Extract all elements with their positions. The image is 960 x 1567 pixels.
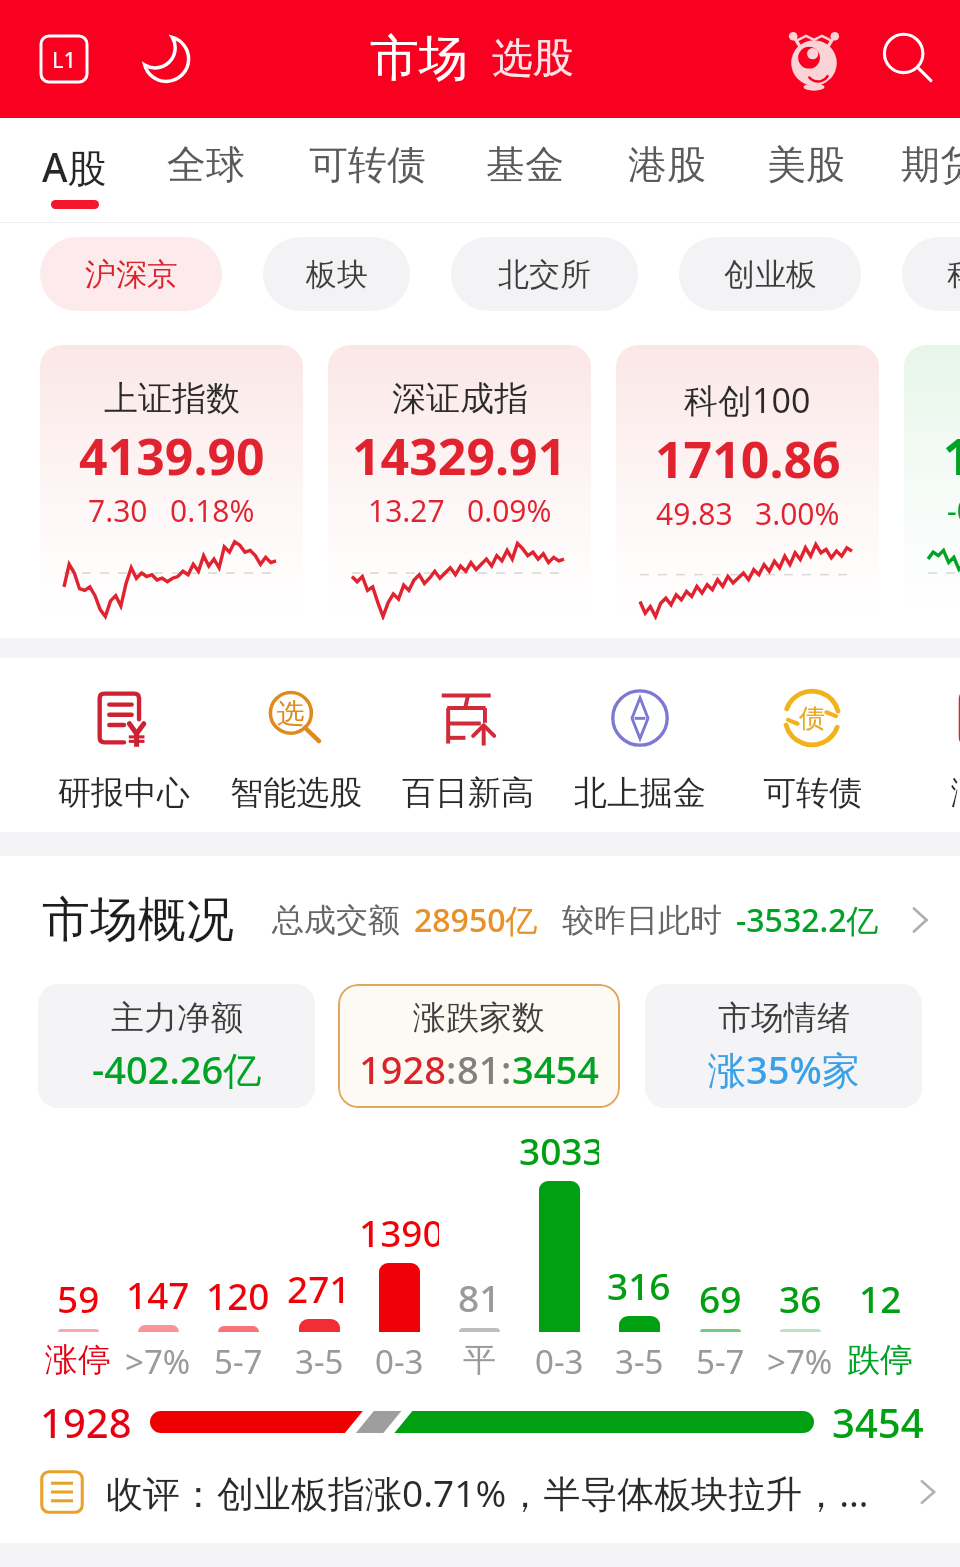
staticText: -0.44	[947, 490, 960, 531]
button[interactable]: Level 1 quotes	[34, 29, 94, 89]
staticText: 跌停	[847, 1339, 913, 1381]
staticText: 科创板	[947, 255, 960, 294]
staticText: 港股	[628, 140, 706, 189]
button[interactable]: A股	[24, 118, 124, 222]
button[interactable]: 北上掘金	[554, 658, 726, 832]
button[interactable]: 市场概况	[0, 856, 960, 984]
button[interactable]: 全球	[156, 118, 256, 222]
staticText: 板块	[306, 255, 368, 294]
button[interactable]: 主力净额	[38, 984, 315, 1108]
staticText: 基金	[486, 140, 564, 189]
staticText: >7%	[767, 1339, 833, 1384]
staticText: >7%	[125, 1339, 191, 1384]
staticText: -3532.2亿	[736, 898, 879, 942]
button[interactable]: Assistant	[778, 23, 850, 95]
staticText: 涨跌家数	[413, 997, 545, 1039]
staticText: 市场情绪	[718, 997, 850, 1039]
button[interactable]: 基金	[475, 118, 575, 222]
staticText: 19765.2	[943, 422, 960, 490]
button[interactable]: 市场	[370, 28, 468, 90]
staticText: 0-3	[375, 1339, 424, 1384]
button[interactable]: 百日新高	[382, 658, 554, 832]
staticText: A股	[42, 140, 107, 193]
staticText: 总成交额	[272, 900, 400, 940]
button[interactable]: 收评：创业板指涨0.71%，半导体板块拉升，…	[0, 1456, 960, 1528]
staticText: 7.30	[88, 490, 148, 531]
button[interactable]: 港股	[617, 118, 717, 222]
button[interactable]: Search	[872, 23, 944, 95]
button[interactable]: 北交所	[451, 237, 638, 311]
button[interactable]: 债	[726, 658, 898, 832]
staticText: 智能选股	[230, 772, 362, 814]
button[interactable]: 深证成指	[328, 345, 591, 620]
staticText: 316	[607, 1260, 671, 1310]
staticText: 81	[458, 1272, 501, 1322]
staticText: 全球	[167, 140, 245, 189]
staticText: 28950亿	[414, 898, 538, 942]
staticText: 涨停	[45, 1339, 111, 1381]
staticText: 较昨日此时	[562, 900, 722, 940]
staticText: 69	[699, 1273, 742, 1323]
staticText: 3-5	[295, 1339, 344, 1384]
staticText: 深证成指	[392, 377, 528, 420]
button[interactable]: 研报中心	[38, 658, 210, 832]
button[interactable]: 上证指数	[40, 345, 303, 620]
staticText: 1928	[40, 1395, 132, 1449]
button[interactable]: 涨跌家数	[338, 984, 620, 1108]
button[interactable]: 期货	[890, 118, 960, 222]
staticText: :	[446, 1043, 457, 1095]
staticText: 13.27	[368, 490, 445, 531]
staticText: 12	[859, 1273, 902, 1323]
staticText: 0-3	[535, 1339, 584, 1384]
staticText: 沪深京	[85, 255, 178, 294]
staticText: 14329.91	[352, 422, 567, 490]
button[interactable]: 板块	[263, 237, 410, 311]
staticText: 3.00%	[755, 493, 840, 534]
button[interactable]: 市场情绪	[645, 984, 922, 1108]
staticText: 可转债	[309, 140, 426, 189]
button[interactable]: Night mode	[134, 29, 194, 89]
button[interactable]: 科创100	[616, 345, 879, 620]
staticText: 北交所	[498, 255, 591, 294]
staticText: 0.18%	[170, 490, 255, 531]
staticText: 120	[206, 1270, 270, 1320]
button[interactable]: 可转债	[297, 118, 437, 222]
staticText: 4139.90	[79, 422, 265, 490]
button[interactable]: 恒生指数	[904, 345, 960, 620]
staticText: 3454	[512, 1043, 599, 1095]
staticText: 3-5	[615, 1339, 664, 1384]
button[interactable]: 涨停	[898, 658, 960, 832]
button[interactable]: 选	[210, 658, 382, 832]
staticText: 1390	[359, 1207, 439, 1257]
staticText: 主力净额	[111, 997, 243, 1039]
staticText: 涨35%家	[708, 1043, 860, 1095]
staticText: 市场概况	[42, 890, 234, 950]
staticText: 5-7	[696, 1339, 745, 1384]
staticText: 0.09%	[467, 490, 552, 531]
staticText: 北上掘金	[574, 772, 706, 814]
staticText: 选	[277, 696, 305, 731]
staticText: 271	[287, 1263, 351, 1313]
staticText: 49.83	[656, 493, 733, 534]
staticText: 市场	[370, 28, 468, 90]
staticText: 5-7	[214, 1339, 263, 1384]
button[interactable]: 美股	[756, 118, 856, 222]
staticText: 科创100	[684, 377, 811, 423]
staticText: 创业板	[724, 255, 817, 294]
button[interactable]: 沪深京	[40, 237, 222, 311]
staticText: 1928	[359, 1043, 446, 1095]
staticText: 研报中心	[58, 772, 190, 814]
staticText: 百日新高	[402, 772, 534, 814]
staticText: 平	[463, 1339, 496, 1381]
staticText: 81	[457, 1043, 501, 1095]
staticText: 147	[126, 1269, 190, 1319]
button[interactable]: 创业板	[679, 237, 861, 311]
button[interactable]: 科创板	[902, 237, 960, 311]
staticText: 选股	[492, 33, 574, 85]
staticText: L1	[52, 44, 77, 74]
button[interactable]: 选股	[492, 33, 574, 85]
staticText: 可转债	[763, 772, 862, 814]
staticText: -402.26亿	[92, 1043, 262, 1095]
staticText: 美股	[767, 140, 845, 189]
staticText: :	[501, 1043, 512, 1095]
